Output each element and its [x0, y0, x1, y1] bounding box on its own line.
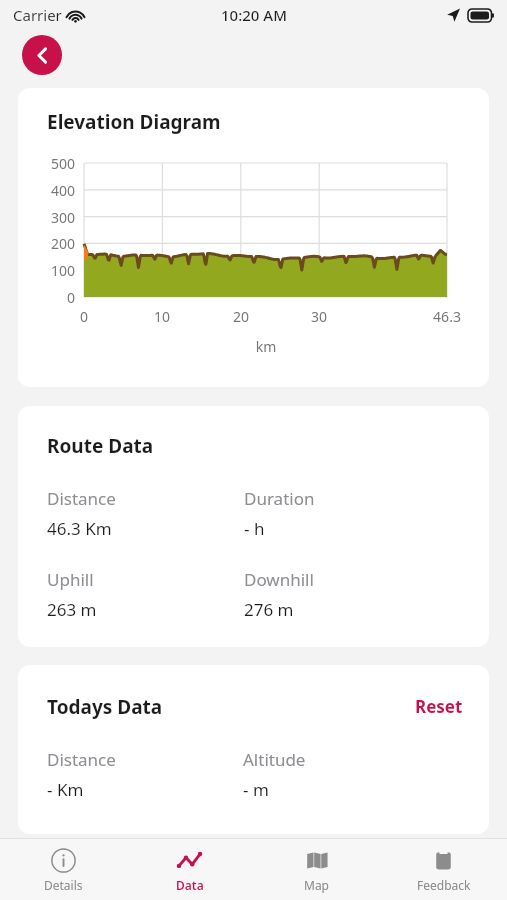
- staticText: 10:20 AM: [221, 5, 287, 25]
- staticText: Reset: [415, 695, 463, 718]
- staticText: 500: [18, 154, 75, 173]
- staticText: Map: [304, 877, 329, 893]
- staticText: Todays Data: [47, 694, 163, 720]
- staticText: 200: [18, 234, 75, 253]
- staticText: Distance: [47, 748, 116, 771]
- staticText: Altitude: [243, 748, 306, 771]
- staticText: 10: [138, 307, 186, 326]
- staticText: 263 m: [47, 598, 97, 621]
- staticText: Elevation Diagram: [47, 109, 221, 135]
- staticText: 0: [60, 307, 108, 326]
- staticText: 300: [18, 208, 75, 227]
- staticText: 20: [217, 307, 265, 326]
- staticText: km: [242, 337, 290, 356]
- staticText: 400: [18, 181, 75, 200]
- button[interactable]: Feedback: [380, 839, 507, 900]
- staticText: Route Data: [47, 433, 154, 459]
- staticText: 46.3: [423, 307, 471, 326]
- staticText: - Km: [47, 778, 84, 801]
- staticText: - m: [243, 778, 269, 801]
- staticText: Data: [176, 877, 204, 893]
- staticText: Carrier: [13, 5, 62, 25]
- button[interactable]: Map: [253, 839, 380, 900]
- button[interactable]: Reset: [411, 692, 467, 721]
- staticText: 276 m: [244, 598, 294, 621]
- staticText: 0: [18, 288, 75, 307]
- staticText: Downhill: [244, 568, 314, 591]
- staticText: 30: [295, 307, 343, 326]
- staticText: Duration: [244, 487, 315, 510]
- staticText: Uphill: [47, 568, 94, 591]
- staticText: Details: [44, 877, 83, 893]
- staticText: - h: [244, 517, 265, 540]
- button[interactable]: Back: [22, 35, 62, 75]
- staticText: Distance: [47, 487, 116, 510]
- button[interactable]: Details: [0, 839, 126, 900]
- staticText: 100: [18, 261, 75, 280]
- staticText: 46.3 Km: [47, 517, 112, 540]
- button[interactable]: Data: [126, 839, 253, 900]
- staticText: Feedback: [417, 877, 471, 893]
